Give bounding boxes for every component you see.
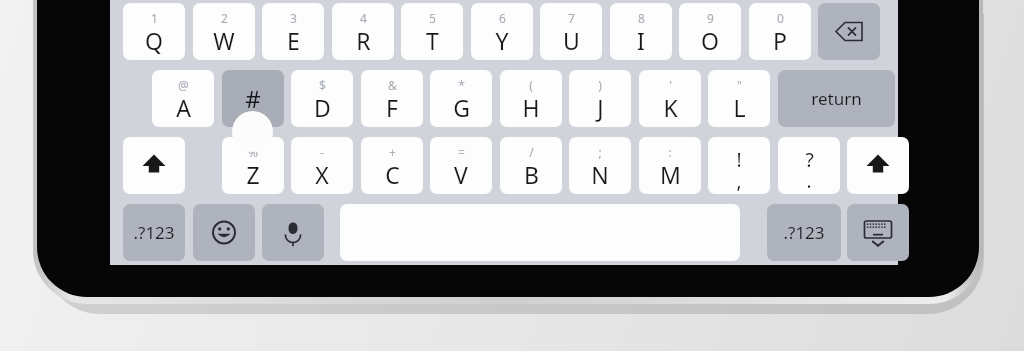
staticText: 7	[568, 10, 575, 26]
button[interactable]: :	[639, 137, 701, 194]
staticText: V	[454, 159, 468, 190]
button[interactable]: 8	[610, 3, 672, 60]
staticText: D	[314, 92, 331, 123]
staticText: /	[529, 144, 534, 160]
staticText: P	[773, 25, 787, 56]
staticText: @	[178, 77, 189, 93]
staticText: U	[563, 25, 580, 56]
button[interactable]: .?123	[123, 204, 185, 261]
staticText: C	[385, 159, 400, 190]
staticText: '	[669, 77, 672, 93]
staticText: *	[458, 77, 465, 93]
staticText: N	[591, 159, 609, 190]
button[interactable]: %	[222, 137, 284, 194]
staticText: T	[426, 25, 439, 56]
staticText: 3	[290, 10, 297, 26]
staticText: Y	[495, 25, 509, 56]
staticText: ?	[805, 147, 814, 173]
staticText: 8	[638, 10, 645, 26]
staticText: X	[315, 159, 329, 190]
button[interactable]: Backspace	[818, 3, 880, 60]
button[interactable]: .?123	[767, 204, 841, 261]
button[interactable]: 9	[679, 3, 741, 60]
button[interactable]: Shift	[847, 137, 909, 194]
staticText: B	[524, 159, 539, 190]
staticText: $	[319, 77, 326, 93]
staticText: Z	[246, 159, 260, 190]
staticText: .	[806, 168, 812, 194]
button[interactable]: 0	[749, 3, 811, 60]
button[interactable]: #	[222, 70, 284, 127]
button[interactable]: 2	[193, 3, 255, 60]
button[interactable]: )	[569, 70, 631, 127]
button[interactable]: &	[361, 70, 423, 127]
button[interactable]: ;	[569, 137, 631, 194]
staticText: %	[248, 144, 258, 160]
staticText: J	[597, 92, 604, 123]
staticText: 2	[221, 10, 228, 26]
staticText: )	[598, 77, 602, 93]
staticText: return	[811, 87, 862, 110]
staticText: A	[176, 92, 191, 123]
button[interactable]: 4	[332, 3, 394, 60]
staticText: E	[287, 25, 300, 56]
staticText: 1	[151, 10, 158, 26]
staticText: 6	[499, 10, 506, 26]
button[interactable]: -	[291, 137, 353, 194]
staticText: "	[737, 77, 742, 93]
staticText: W	[213, 25, 235, 56]
staticText: R	[356, 25, 371, 56]
staticText: 0	[777, 10, 784, 26]
button[interactable]: 7	[540, 3, 602, 60]
button[interactable]: @	[152, 70, 214, 127]
staticText: #	[245, 82, 261, 115]
staticText: 5	[429, 10, 436, 26]
staticText: F	[386, 92, 398, 123]
staticText: .?123	[133, 221, 175, 244]
staticText: ;	[598, 144, 602, 160]
button[interactable]: $	[291, 70, 353, 127]
staticText: +	[389, 144, 396, 160]
button[interactable]: +	[361, 137, 423, 194]
button[interactable]: Emoji	[193, 204, 255, 261]
staticText: Q	[145, 25, 163, 56]
button[interactable]: Shift	[123, 137, 185, 194]
button[interactable]: (	[500, 70, 562, 127]
button[interactable]: 1	[123, 3, 185, 60]
staticText: =	[458, 144, 465, 160]
staticText: M	[660, 159, 681, 190]
button[interactable]: '	[639, 70, 701, 127]
button[interactable]: Hide keyboard	[847, 204, 909, 261]
button[interactable]: "	[708, 70, 770, 127]
button[interactable]: Voice input	[262, 204, 324, 261]
button[interactable]: =	[430, 137, 492, 194]
button[interactable]: ?	[778, 137, 840, 194]
staticText: (	[529, 77, 533, 93]
staticText: H	[522, 92, 540, 123]
staticText: G	[453, 92, 470, 123]
staticText: .?123	[783, 221, 825, 244]
button[interactable]: /	[500, 137, 562, 194]
button[interactable]: *	[430, 70, 492, 127]
button[interactable]: 5	[401, 3, 463, 60]
staticText: ,	[736, 168, 742, 194]
staticText: 9	[707, 10, 714, 26]
button[interactable]: 3	[262, 3, 324, 60]
button[interactable]: 6	[471, 3, 533, 60]
staticText: I	[637, 25, 645, 56]
staticText: -	[320, 144, 324, 160]
button[interactable]: return	[778, 70, 895, 127]
staticText: L	[733, 92, 746, 123]
staticText: 4	[360, 10, 367, 26]
staticText: !	[736, 147, 742, 173]
staticText: :	[668, 144, 672, 160]
staticText: &	[388, 77, 397, 93]
staticText: K	[663, 92, 678, 123]
button[interactable]: !	[708, 137, 770, 194]
staticText: O	[701, 25, 719, 56]
